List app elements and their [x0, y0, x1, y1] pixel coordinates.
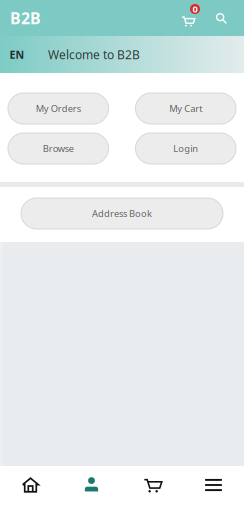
staticText: My Cart — [169, 102, 202, 115]
staticText: B2B — [10, 7, 41, 29]
staticText: Address Book — [92, 207, 152, 220]
button[interactable]: Browse — [8, 133, 108, 164]
button[interactable]: Search — [210, 3, 232, 33]
staticText: 0 — [192, 3, 197, 15]
button[interactable]: Address Book — [21, 198, 223, 229]
staticText: Login — [173, 142, 198, 155]
button[interactable]: My Cart — [135, 93, 236, 124]
staticText: Welcome to B2B — [48, 46, 140, 62]
button[interactable]: Cart — [178, 3, 204, 33]
button[interactable]: Cart — [122, 466, 183, 504]
button[interactable]: Login — [135, 133, 236, 164]
button[interactable]: My Orders — [8, 93, 108, 124]
button[interactable]: Home — [0, 466, 61, 504]
staticText: Browse — [43, 142, 74, 155]
button[interactable]: Account — [61, 466, 122, 504]
staticText: EN — [9, 47, 24, 62]
staticText: My Orders — [36, 102, 81, 115]
button[interactable]: EN — [0, 36, 34, 73]
button[interactable]: Menu — [183, 466, 244, 504]
